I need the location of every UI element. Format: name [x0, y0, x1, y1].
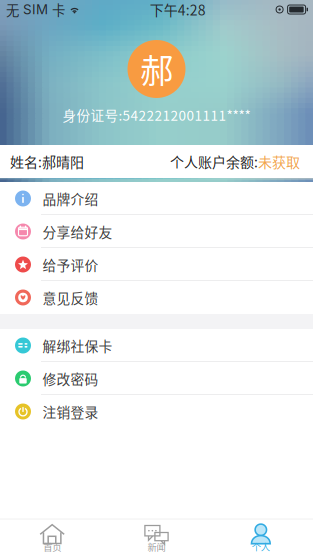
staticText: 郝: [140, 44, 173, 93]
button[interactable]: 个人: [209, 520, 313, 556]
staticText: 意见反馈: [42, 288, 98, 307]
staticText: 个人账户余额:: [170, 151, 258, 172]
staticText: 无: [6, 0, 19, 19]
staticText: 个人: [252, 540, 270, 553]
staticText: 修改密码: [42, 369, 98, 388]
staticText: 下午4:28: [150, 0, 206, 20]
button[interactable]: 首页: [0, 520, 104, 556]
button[interactable]: 给予评价: [0, 248, 313, 281]
staticText: 品牌介绍: [42, 189, 98, 208]
button[interactable]: 分享给好友: [0, 215, 313, 248]
staticText: 新闻: [147, 540, 165, 553]
button[interactable]: 注销登录: [0, 395, 313, 428]
staticText: 给予评价: [42, 255, 98, 274]
button[interactable]: 修改密码: [0, 362, 313, 395]
staticText: 卡: [52, 0, 65, 19]
staticText: 未获取: [258, 151, 300, 172]
staticText: 身份证号:5422212001111****: [62, 105, 250, 125]
staticText: 解绑社保卡: [42, 336, 112, 355]
button[interactable]: 新闻: [104, 520, 209, 556]
staticText: 分享给好友: [42, 222, 112, 241]
button[interactable]: 意见反馈: [0, 281, 313, 314]
staticText: SIM: [19, 1, 52, 17]
staticText: 首页: [43, 540, 61, 553]
staticText: 姓名:郝晴阳: [10, 151, 84, 172]
staticText: 注销登录: [42, 402, 98, 421]
button[interactable]: 品牌介绍: [0, 182, 313, 215]
button[interactable]: 解绑社保卡: [0, 329, 313, 362]
